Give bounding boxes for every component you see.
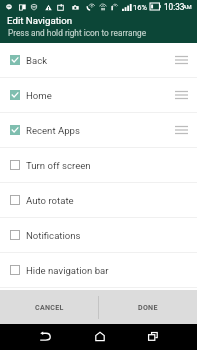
button[interactable]: Home <box>91 328 108 345</box>
button[interactable]: Auto rotate <box>0 183 197 218</box>
staticText: 16% <box>133 3 147 12</box>
button[interactable]: Hide navigation bar <box>0 253 197 288</box>
button[interactable]: Notifications <box>0 218 197 253</box>
button[interactable]: Home <box>0 78 197 113</box>
button[interactable]: Recent apps <box>144 328 161 345</box>
staticText: CANCEL <box>35 303 64 311</box>
staticText: 10:33 <box>164 2 185 12</box>
staticText: Edit Navigation <box>7 15 73 26</box>
staticText: Hide navigation bar <box>26 265 109 276</box>
staticText: Press and hold right icon to rearrange <box>8 28 147 38</box>
button[interactable]: Back <box>36 328 53 345</box>
button[interactable]: Recent Apps <box>0 113 197 148</box>
staticText: Home <box>26 90 52 101</box>
staticText: Recent Apps <box>26 125 80 136</box>
button[interactable]: Turn off screen <box>0 148 197 183</box>
staticText: Notifications <box>26 230 81 241</box>
button[interactable]: CANCEL <box>0 290 98 324</box>
button[interactable]: DONE <box>99 290 197 324</box>
staticText: Turn off screen <box>26 160 91 171</box>
staticText: AM <box>183 4 192 11</box>
staticText: Back <box>26 55 48 66</box>
button[interactable]: Back <box>0 43 197 78</box>
staticText: DONE <box>138 303 158 311</box>
staticText: Auto rotate <box>26 195 74 206</box>
